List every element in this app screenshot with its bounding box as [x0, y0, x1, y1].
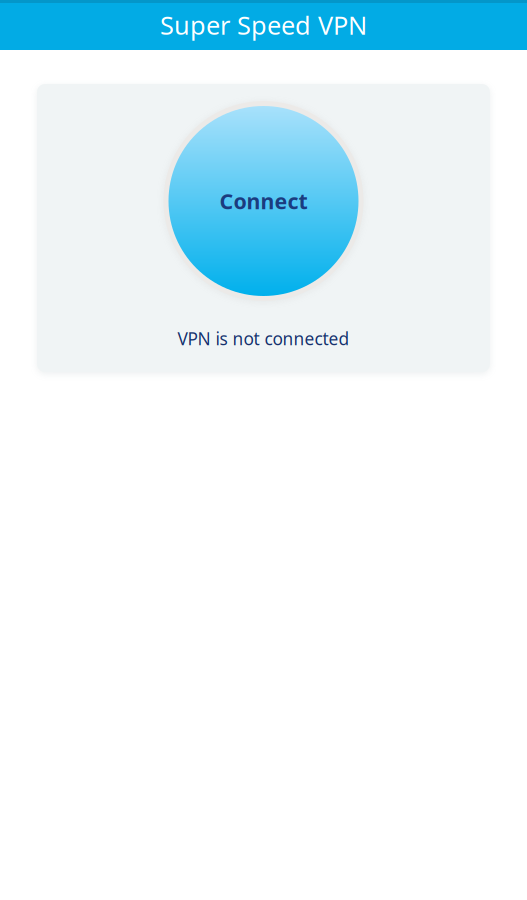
staticText: Connect [219, 187, 307, 215]
staticText: VPN is not connected [177, 327, 349, 350]
staticText: Super Speed VPN [160, 8, 367, 42]
button[interactable]: Connect [163, 101, 363, 301]
